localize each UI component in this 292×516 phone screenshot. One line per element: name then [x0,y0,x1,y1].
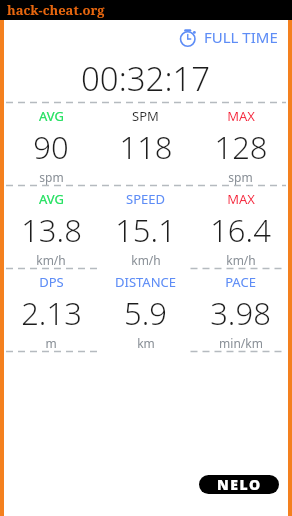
staticText: km/h [36,252,66,268]
staticText: km/h [131,252,161,268]
staticText: spm [39,169,64,185]
staticText: SPEED [126,190,165,208]
button[interactable]: DISTANCE [98,269,193,351]
staticText: FULL TIME [204,27,278,47]
button[interactable]: DPS [4,269,98,351]
staticText: 128 [214,126,268,168]
button[interactable]: AVG [4,103,98,185]
staticText: m [45,335,57,351]
staticText: NELO [217,475,262,494]
button[interactable]: SPM [98,103,193,185]
button[interactable]: MAX [193,186,288,268]
staticText: 118 [119,126,173,168]
button[interactable]: MAX [193,103,288,185]
button[interactable]: SPEED [98,186,193,268]
staticText: 00:32:17 [81,56,211,101]
staticText: DPS [39,273,64,291]
staticText: 2.13 [21,292,82,334]
staticText: 90 [33,126,69,168]
staticText: 13.8 [21,209,82,251]
staticText: PACE [225,273,256,291]
button[interactable]: AVG [4,186,98,268]
staticText: min/km [219,335,263,351]
staticText: MAX [227,190,255,208]
staticText: SPM [132,107,159,125]
staticText: AVG [39,190,64,208]
button[interactable]: 00:32:17 [4,54,288,102]
staticText: km/h [226,252,256,268]
button[interactable]: NELO [199,475,279,494]
staticText: 3.98 [210,292,271,334]
staticText: 15.1 [115,209,176,251]
other: Full time [179,28,198,47]
button[interactable]: Full time [4,20,288,54]
staticText: km [137,335,155,351]
staticText: AVG [39,107,64,125]
staticText: 5.9 [124,292,167,334]
staticText: 16.4 [210,209,271,251]
staticText: spm [228,169,253,185]
staticText: hack-cheat.org [7,1,105,19]
staticText: DISTANCE [115,273,176,291]
staticText: MAX [227,107,255,125]
button[interactable]: PACE [193,269,288,351]
